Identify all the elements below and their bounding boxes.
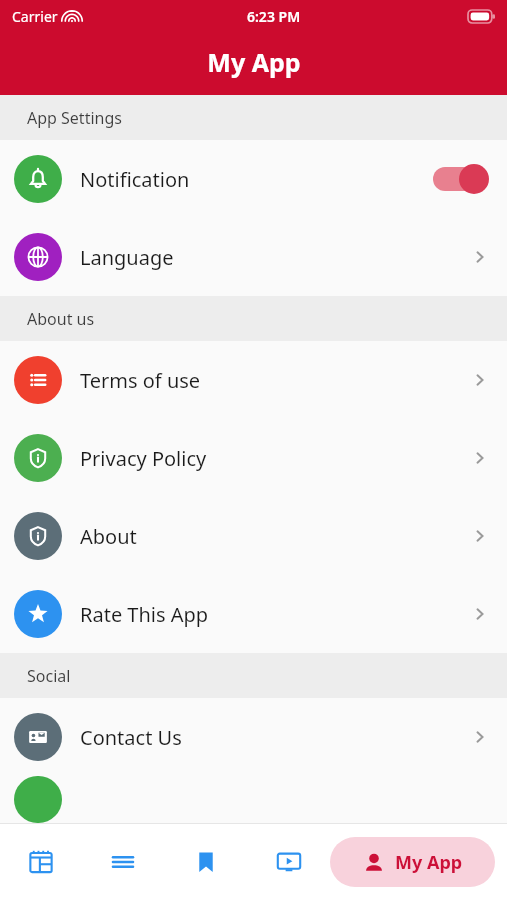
button[interactable]: Rate This App bbox=[0, 575, 507, 653]
button[interactable]: Dashboard bbox=[0, 823, 82, 900]
staticText: Rate This App bbox=[80, 601, 471, 628]
staticText: App Settings bbox=[27, 107, 122, 129]
staticText: About us bbox=[27, 308, 95, 330]
button[interactable]: Language bbox=[0, 218, 507, 296]
button[interactable]: Privacy Policy bbox=[0, 419, 507, 497]
staticText: Language bbox=[80, 244, 471, 271]
button[interactable]: Contact Us bbox=[0, 698, 507, 776]
staticText: Notification bbox=[80, 166, 433, 193]
staticText: Carrier bbox=[12, 7, 58, 26]
button[interactable]: Bookmarks bbox=[164, 823, 247, 900]
staticText: About bbox=[80, 523, 471, 550]
button[interactable]: Terms of use bbox=[0, 341, 507, 419]
button[interactable]: Menu bbox=[82, 823, 164, 900]
button[interactable]: About bbox=[0, 497, 507, 575]
staticText: My App bbox=[395, 850, 463, 875]
staticText: Social bbox=[27, 665, 71, 687]
button[interactable]: Notification bbox=[0, 140, 507, 218]
staticText: Contact Us bbox=[80, 724, 471, 751]
button[interactable]: Videos bbox=[247, 823, 330, 900]
button[interactable]: My App bbox=[330, 837, 495, 887]
staticText: Terms of use bbox=[80, 367, 471, 394]
staticText: 6:23 PM bbox=[247, 7, 301, 26]
button[interactable] bbox=[0, 776, 507, 823]
staticText: My App bbox=[207, 45, 301, 79]
staticText: Privacy Policy bbox=[80, 445, 471, 472]
